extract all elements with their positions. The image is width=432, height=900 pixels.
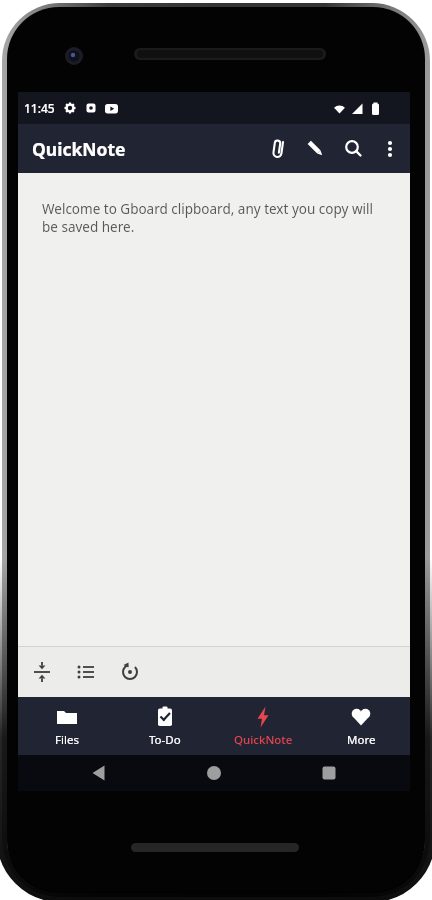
- staticText: More: [347, 732, 376, 748]
- button[interactable]: [81, 755, 117, 791]
- button[interactable]: Files: [18, 697, 116, 755]
- button[interactable]: [196, 755, 232, 791]
- staticText: Files: [55, 732, 79, 748]
- button[interactable]: [20, 647, 64, 697]
- staticText: Welcome to Gboard clipboard, any text yo…: [42, 200, 373, 236]
- button[interactable]: [311, 755, 347, 791]
- button[interactable]: [64, 647, 108, 697]
- button[interactable]: QuickNote: [214, 697, 312, 755]
- staticText: To-Do: [149, 732, 181, 748]
- button[interactable]: [108, 647, 152, 697]
- staticText: QuickNote: [234, 732, 293, 748]
- button[interactable]: [259, 124, 297, 173]
- button[interactable]: More: [312, 697, 410, 755]
- button[interactable]: [297, 124, 335, 173]
- staticText: QuickNote: [32, 137, 126, 161]
- button[interactable]: To-Do: [116, 697, 214, 755]
- button[interactable]: [373, 124, 407, 173]
- button[interactable]: [335, 124, 373, 173]
- staticText: 11:45: [24, 100, 55, 116]
